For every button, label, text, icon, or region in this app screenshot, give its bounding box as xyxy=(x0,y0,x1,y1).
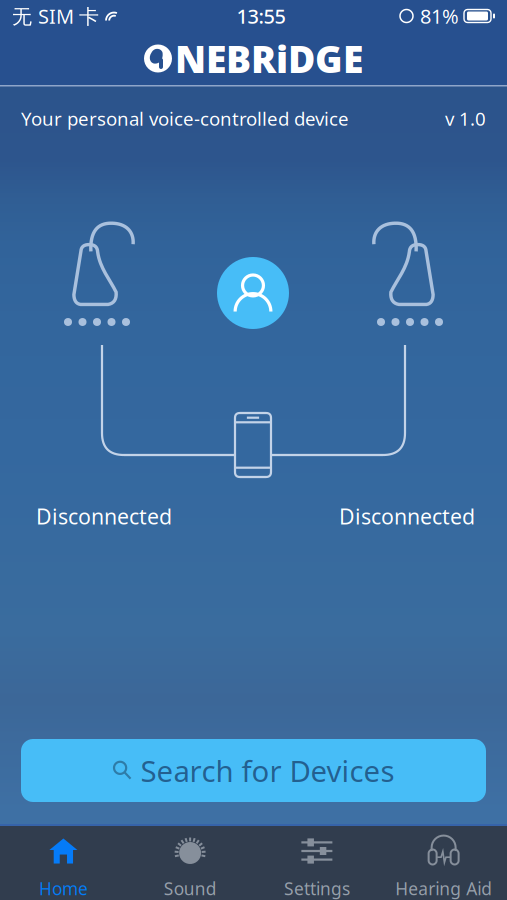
button[interactable]: Home xyxy=(0,826,127,900)
staticText: Home xyxy=(39,877,88,900)
button[interactable]: Search for Devices xyxy=(21,739,486,802)
staticText: 81% xyxy=(420,3,459,29)
staticText: Disconnected xyxy=(339,502,475,530)
staticText: Settings xyxy=(284,877,350,900)
button[interactable]: Settings xyxy=(253,826,380,900)
staticText: Sound xyxy=(164,877,217,900)
button[interactable]: Hearing Aid xyxy=(380,826,507,900)
staticText: Hearing Aid xyxy=(395,877,492,900)
staticText: NEBRiDGE xyxy=(175,34,363,83)
staticText: Your personal voice-controlled device xyxy=(21,106,349,131)
staticText: v 1.0 xyxy=(445,106,486,131)
staticText: 13:55 xyxy=(236,3,285,29)
button[interactable]: Sound xyxy=(127,826,254,900)
staticText: 无 SIM 卡 xyxy=(12,3,99,29)
staticText: Search for Devices xyxy=(140,751,394,790)
staticText: Disconnected xyxy=(36,502,172,530)
